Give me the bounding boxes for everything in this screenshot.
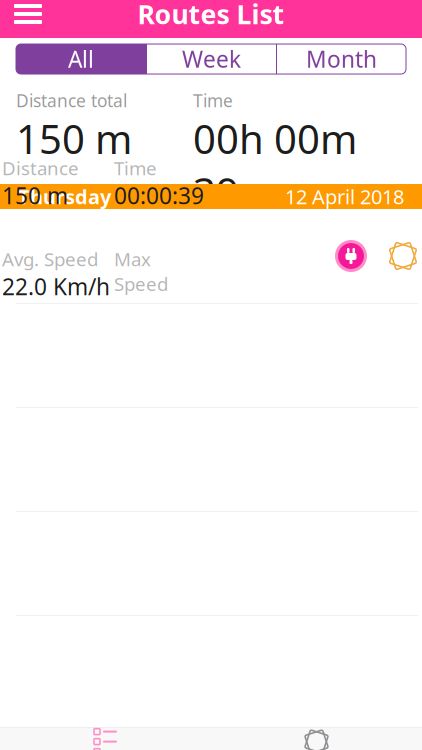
staticText: Week [182,44,241,74]
staticText: All [68,44,94,74]
button[interactable]: Month [277,44,406,74]
staticText: 00:00:39 [114,180,204,210]
button[interactable]: Routes List [0,728,211,750]
staticText: Routes List [137,0,284,32]
staticText: Distance total [16,89,127,112]
button[interactable]: Menu [4,0,52,36]
staticText: 00h 00m 39s [193,112,357,218]
staticText: 1 [16,249,33,288]
staticText: Avg. Speed [2,247,98,271]
button[interactable]: Week [147,44,276,74]
staticText: Thursday [18,183,111,210]
staticText: Distance [2,156,79,180]
staticText: 12 April 2018 [285,183,404,210]
staticText: Time [114,156,157,180]
staticText: Month [306,44,377,74]
staticText: 150 m [16,112,132,165]
button[interactable]: Favorite routes [211,728,422,750]
button[interactable]: All [16,44,146,74]
button[interactable]: Distance [0,209,422,303]
staticText: 150 m [2,180,68,210]
staticText: Max Speed [114,247,168,296]
staticText: CO / Save [265,226,345,249]
staticText: Time [193,89,233,112]
staticText: 22.0 Km/h [2,271,110,301]
